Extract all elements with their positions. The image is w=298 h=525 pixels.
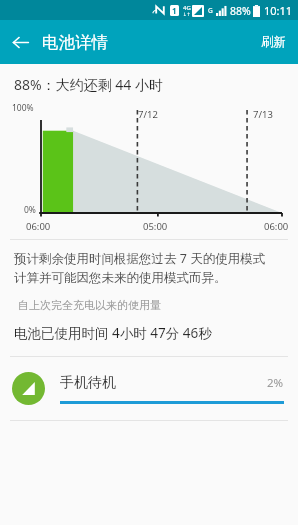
staticText: 06:00 [264, 220, 289, 233]
staticText: 自上次完全充电以来的使用量 [18, 298, 161, 312]
staticText: 刷新 [261, 34, 286, 50]
staticText: 7/12 [138, 108, 158, 121]
staticText: 05:00 [143, 220, 168, 233]
staticText: 06:00 [26, 220, 51, 233]
staticText: 2% [267, 375, 284, 391]
staticText: 88%：大约还剩 44 小时 [14, 75, 163, 94]
button[interactable]: 手机待机 [0, 357, 298, 420]
button[interactable]: Back [0, 22, 40, 62]
staticText: 电池详情 [42, 32, 108, 53]
staticText: 10:11 [264, 3, 293, 18]
staticText: 电池已使用时间 4小时 47分 46秒 [14, 324, 212, 342]
staticText: 100% [12, 102, 34, 114]
staticText: 88% [230, 4, 251, 18]
staticText: ↓↑ [183, 12, 191, 17]
staticText: 0% [24, 204, 36, 216]
staticText: G [208, 6, 213, 15]
staticText: 1 [172, 5, 177, 16]
staticText: 手机待机 [60, 374, 267, 392]
staticText: 预计剩余使用时间根据您过去 7 天的使用模式 计算并可能因您未来的使用模式而异。 [14, 250, 266, 286]
button[interactable]: 刷新 [249, 24, 298, 60]
staticText: 4G [183, 4, 191, 12]
staticText: 7/13 [253, 108, 273, 121]
